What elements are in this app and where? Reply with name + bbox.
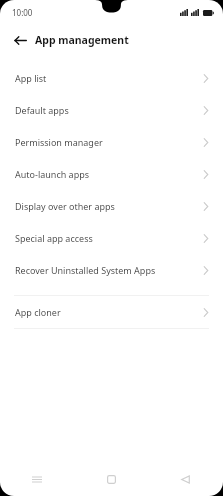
staticText: Default apps (15, 104, 203, 116)
button[interactable]: Default apps (0, 94, 223, 126)
button[interactable]: Back (8, 28, 32, 52)
button[interactable]: App list (0, 62, 223, 94)
button[interactable]: App cloner (0, 296, 223, 328)
button[interactable]: Recover Uninstalled System Apps (0, 254, 223, 286)
staticText: App cloner (15, 306, 203, 318)
staticText: Special app access (15, 232, 203, 244)
button[interactable]: Recents (0, 462, 74, 496)
staticText: App management (35, 33, 129, 47)
staticText: App list (15, 72, 203, 84)
button[interactable]: Home (74, 462, 148, 496)
button[interactable]: Permission manager (0, 126, 223, 158)
staticText: Recover Uninstalled System Apps (15, 264, 203, 276)
button[interactable]: Display over other apps (0, 190, 223, 222)
staticText: 10:00 (12, 7, 33, 18)
staticText: Auto-launch apps (15, 168, 203, 180)
button[interactable]: Auto-launch apps (0, 158, 223, 190)
staticText: Display over other apps (15, 200, 203, 212)
button[interactable]: Back (148, 462, 222, 496)
button[interactable]: Special app access (0, 222, 223, 254)
staticText: Permission manager (15, 136, 203, 148)
